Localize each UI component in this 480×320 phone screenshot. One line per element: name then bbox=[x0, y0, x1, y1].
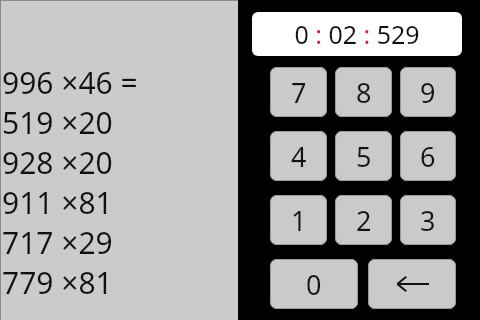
staticText: 779 ×81 bbox=[2, 262, 113, 302]
staticText: 7 bbox=[291, 74, 307, 111]
staticText: 9 bbox=[420, 74, 436, 111]
staticText: 5 bbox=[356, 138, 372, 175]
staticText: 3 bbox=[420, 202, 436, 239]
button[interactable]: 5 bbox=[335, 131, 392, 181]
staticText: 6 bbox=[420, 138, 436, 175]
button[interactable]: Backspace bbox=[368, 259, 456, 309]
staticText: 4 bbox=[291, 138, 307, 175]
staticText: 0 bbox=[306, 266, 322, 303]
button[interactable]: 8 bbox=[335, 67, 392, 117]
button[interactable]: 6 bbox=[400, 131, 456, 181]
button[interactable]: 3 bbox=[400, 195, 456, 245]
staticText: 996 ×46 = bbox=[2, 62, 138, 102]
button[interactable]: 1 bbox=[270, 195, 327, 245]
button[interactable]: 4 bbox=[270, 131, 327, 181]
button[interactable]: 2 bbox=[335, 195, 392, 245]
button[interactable]: 0 : 02 : 529 bbox=[252, 12, 462, 56]
button[interactable]: 9 bbox=[400, 67, 456, 117]
staticText: 0 : 02 : 529 bbox=[294, 17, 420, 51]
staticText: 928 ×20 bbox=[2, 142, 113, 182]
staticText: 519 ×20 bbox=[2, 102, 113, 142]
button[interactable]: 7 bbox=[270, 67, 327, 117]
staticText: 8 bbox=[356, 74, 372, 111]
staticText: 717 ×29 bbox=[2, 222, 113, 262]
button[interactable]: 0 bbox=[270, 259, 358, 309]
staticText: 1 bbox=[291, 202, 307, 239]
staticText: 2 bbox=[356, 202, 372, 239]
staticText: 911 ×81 bbox=[2, 182, 113, 222]
